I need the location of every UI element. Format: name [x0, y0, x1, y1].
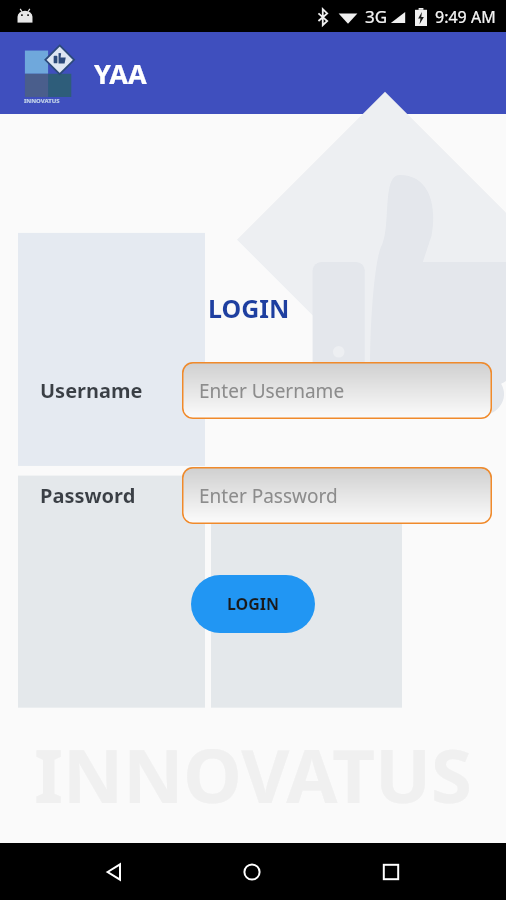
button[interactable]: Recent apps	[367, 848, 415, 896]
staticText: Password	[40, 482, 136, 509]
button[interactable]: Home	[228, 848, 276, 896]
staticText: YAA	[94, 55, 147, 92]
staticText: LOGIN	[227, 593, 280, 615]
staticText: 3G	[365, 5, 388, 28]
button[interactable]: Innovatus logo	[22, 40, 80, 106]
staticText: Username	[40, 377, 143, 404]
button[interactable]: LOGIN	[191, 575, 315, 633]
button[interactable]: Back	[90, 848, 138, 896]
staticText: Enter Password	[199, 483, 338, 509]
staticText: 9:49 AM	[435, 6, 496, 28]
button[interactable]: Enter Username	[182, 362, 492, 419]
staticText: LOGIN	[208, 291, 290, 325]
staticText: INNOVATUS	[24, 97, 60, 105]
button[interactable]: Enter Password	[182, 467, 492, 524]
staticText: Enter Username	[199, 378, 345, 404]
staticText: INNOVATUS	[0, 724, 506, 825]
